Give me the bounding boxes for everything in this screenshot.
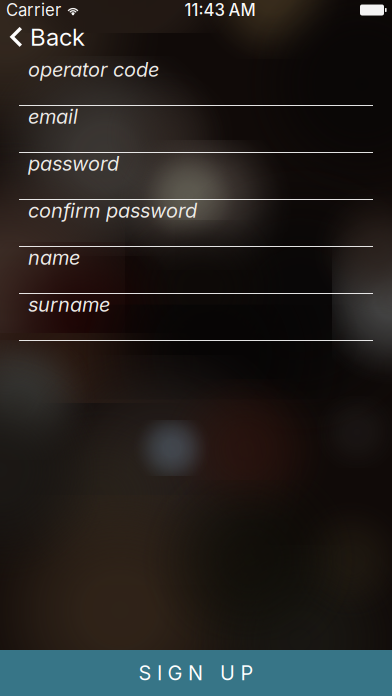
staticText: password [28,151,119,176]
staticText: operator code [28,57,159,82]
staticText: SIGN UP [138,661,253,685]
staticText: 11:43 AM [184,0,255,20]
staticText: name [28,245,80,270]
staticText: Carrier [6,0,61,20]
staticText: email [28,104,78,129]
button[interactable]: SIGN UP [0,650,392,696]
staticText: surname [28,292,110,317]
button[interactable]: Back [0,20,97,54]
staticText: Back [30,22,85,51]
staticText: confirm password [28,198,197,223]
